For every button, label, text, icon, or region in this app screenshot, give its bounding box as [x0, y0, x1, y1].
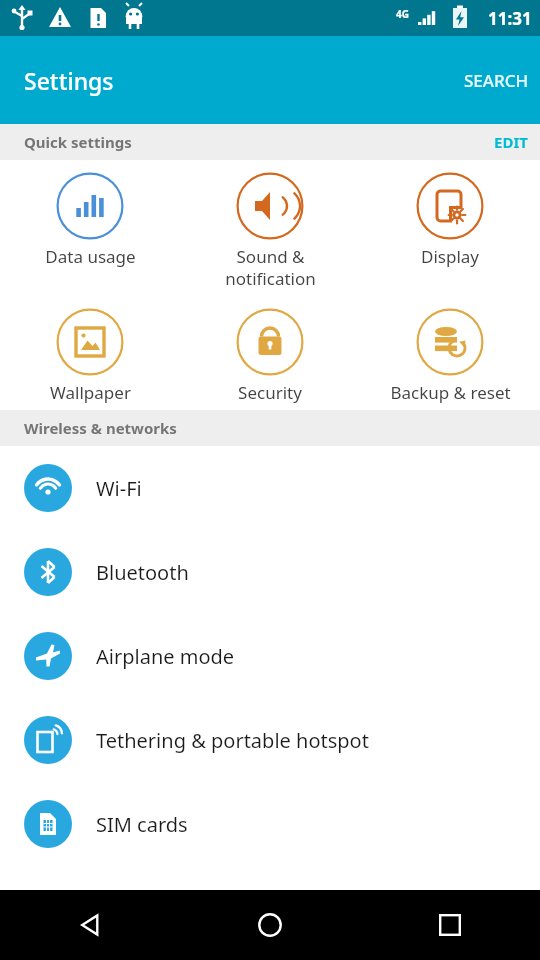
staticText: Wireless & networks: [24, 418, 177, 438]
button[interactable]: EDIT: [482, 124, 540, 160]
button[interactable]: Security: [180, 296, 360, 410]
staticText: SEARCH: [464, 69, 529, 92]
button[interactable]: Wi-Fi: [0, 446, 540, 530]
button[interactable]: Wallpaper: [0, 296, 180, 410]
staticText: Quick settings: [24, 132, 132, 152]
staticText: Tethering & portable hotspot: [96, 727, 369, 754]
button[interactable]: Data usage: [0, 160, 180, 274]
button[interactable]: Display: [360, 160, 540, 274]
staticText: Wi-Fi: [96, 475, 142, 502]
staticText: Airplane mode: [96, 643, 235, 670]
button[interactable]: Tethering & portable hotspot: [0, 698, 540, 782]
staticText: Display: [421, 245, 479, 268]
staticText: Data usage: [45, 245, 136, 268]
staticText: Backup & reset: [390, 381, 511, 404]
button[interactable]: Recent apps: [360, 890, 540, 960]
staticText: EDIT: [494, 132, 528, 152]
button[interactable]: Sound & notification: [180, 160, 360, 296]
button[interactable]: Airplane mode: [0, 614, 540, 698]
staticText: 4G: [396, 7, 409, 21]
button[interactable]: SEARCH: [453, 57, 540, 104]
staticText: Sound & notification: [225, 245, 316, 290]
staticText: Wallpaper: [50, 381, 131, 404]
button[interactable]: Home: [180, 890, 360, 960]
staticText: Settings: [24, 65, 114, 96]
button[interactable]: Back: [0, 890, 180, 960]
staticText: Bluetooth: [96, 559, 189, 586]
button[interactable]: Backup & reset: [360, 296, 540, 410]
staticText: 11:31: [488, 7, 532, 30]
staticText: SIM cards: [96, 811, 188, 838]
staticText: Security: [238, 381, 302, 404]
button[interactable]: Bluetooth: [0, 530, 540, 614]
button[interactable]: SIM cards: [0, 782, 540, 866]
